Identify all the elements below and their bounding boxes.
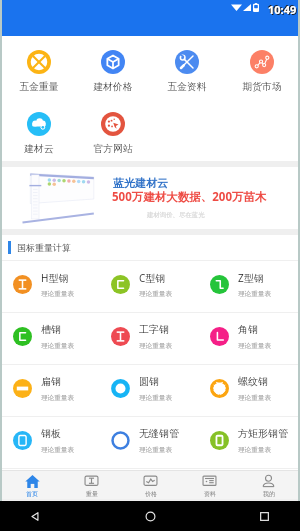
staticText: Z型钢 (238, 271, 264, 285)
button[interactable]: 首页 (2, 470, 62, 499)
staticText: 理论重量表 (139, 394, 172, 402)
staticText: 蓝光建材云 (113, 176, 168, 190)
staticText: 价格 (145, 490, 157, 498)
staticText: 工字钢 (139, 323, 169, 336)
other: Back (30, 511, 41, 522)
staticText: 理论重量表 (139, 446, 172, 454)
staticText: H型钢 (41, 271, 69, 285)
button[interactable]: 钢板 (2, 417, 100, 468)
button[interactable]: 螺纹钢 (199, 365, 298, 416)
staticText: 五金重量 (19, 81, 59, 93)
staticText: 钢板 (41, 427, 61, 440)
staticText: 10:49 (267, 1, 296, 16)
button[interactable]: 五金资料 (150, 46, 224, 94)
staticText: 10:49 (269, 3, 298, 18)
button[interactable]: 圆钢 (100, 365, 199, 416)
staticText: 螺纹钢 (238, 375, 268, 388)
staticText: 理论重量表 (41, 394, 74, 402)
staticText: 我的 (263, 490, 275, 498)
button[interactable]: 官方网站 (76, 108, 150, 156)
staticText: 方矩形钢管 (238, 427, 288, 440)
button[interactable]: 五金重量 (2, 46, 76, 94)
button[interactable]: 重量 (62, 470, 121, 499)
button[interactable]: 期货市场 (225, 46, 299, 94)
staticText: 重量 (86, 490, 98, 498)
staticText: 理论重量表 (238, 394, 271, 402)
staticText: 500万建材大数据、200万苗木 (112, 189, 267, 205)
button[interactable]: 方矩形钢管 (199, 417, 298, 468)
staticText: 角钢 (238, 323, 258, 336)
staticText: 圆钢 (139, 375, 159, 388)
staticText: 期货市场 (242, 81, 282, 93)
button[interactable]: C型钢 (100, 261, 199, 312)
staticText: 建材价格 (93, 81, 133, 93)
staticText: 理论重量表 (41, 290, 74, 298)
button[interactable]: 我的 (239, 470, 298, 499)
staticText: 理论重量表 (238, 342, 271, 350)
staticText: 理论重量表 (41, 342, 74, 350)
staticText: 理论重量表 (41, 446, 74, 454)
staticText: 理论重量表 (139, 290, 172, 298)
button[interactable]: 角钢 (199, 313, 298, 364)
button[interactable]: H型钢 (2, 261, 100, 312)
staticText: 建材询价、尽在蓝光 (147, 211, 205, 219)
button[interactable]: 价格 (121, 470, 180, 499)
staticText: 官方网站 (93, 143, 133, 155)
staticText: 国标重量计算 (17, 242, 71, 253)
staticText: 理论重量表 (238, 290, 271, 298)
button[interactable]: 工字钢 (100, 313, 199, 364)
staticText: 无缝钢管 (139, 427, 179, 440)
button[interactable]: 资料 (180, 470, 239, 499)
staticText: 槽钢 (41, 323, 61, 336)
button[interactable]: 槽钢 (2, 313, 100, 364)
button[interactable]: 无缝钢管 (100, 417, 199, 468)
other: Recents (259, 511, 270, 522)
staticText: 扁钢 (41, 375, 61, 388)
button[interactable]: 蓝光建材云 (2, 167, 298, 229)
button[interactable]: Z型钢 (199, 261, 298, 312)
other: Home (145, 511, 156, 522)
staticText: 理论重量表 (139, 342, 172, 350)
staticText: 建材云 (24, 143, 54, 155)
button[interactable]: 建材云 (2, 108, 76, 156)
button[interactable]: 扁钢 (2, 365, 100, 416)
staticText: 五金资料 (167, 81, 207, 93)
staticText: 理论重量表 (238, 446, 271, 454)
staticText: 10:49 (268, 2, 297, 17)
button[interactable]: 建材价格 (76, 46, 150, 94)
staticText: 资料 (204, 490, 216, 498)
staticText: 首页 (26, 490, 38, 498)
staticText: C型钢 (139, 271, 166, 285)
